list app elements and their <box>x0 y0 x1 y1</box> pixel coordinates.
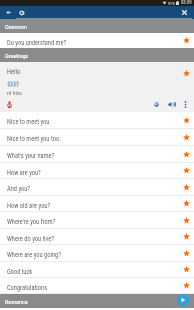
button[interactable]: Nice to meet you <box>0 112 194 129</box>
button[interactable]: More options <box>180 99 191 110</box>
staticText: Hello <box>7 68 21 76</box>
staticText: nǐ hǎo <box>7 89 22 96</box>
staticText: Where are you going? <box>7 251 61 259</box>
button[interactable]: Favourite <box>181 115 192 126</box>
button[interactable]: Where are you going? <box>0 245 194 262</box>
button[interactable]: Nice to meet you too. <box>0 129 194 146</box>
button[interactable]: Favourite <box>181 248 192 259</box>
button[interactable]: Play slowly <box>151 99 162 110</box>
staticText: Good luck <box>7 268 33 276</box>
button[interactable]: Favourite <box>181 198 192 209</box>
staticText: Greetings <box>5 52 29 59</box>
button[interactable]: Play all <box>177 294 189 306</box>
button[interactable]: Language <box>16 7 28 19</box>
button[interactable]: Good luck <box>0 262 194 278</box>
staticText: How old are you? <box>7 202 51 210</box>
button[interactable]: Where do you live? <box>0 229 194 245</box>
button[interactable]: Favourite <box>181 132 192 143</box>
staticText: How are you? <box>7 169 41 177</box>
staticText: Congratulations <box>7 284 48 292</box>
button[interactable]: Romance <box>0 294 194 308</box>
button[interactable]: Play audio <box>166 99 177 110</box>
staticText: Nice to meet you <box>7 118 50 126</box>
button[interactable]: Where're you from? <box>0 212 194 229</box>
button[interactable]: Congratulations <box>0 278 194 294</box>
button[interactable]: Close <box>178 6 191 19</box>
button[interactable]: Favourite <box>181 68 192 79</box>
staticText: 97% <box>168 1 175 6</box>
staticText: 你好 <box>7 80 20 88</box>
button[interactable]: Favourite <box>181 182 192 193</box>
button[interactable]: Favourite <box>181 231 192 242</box>
button[interactable]: Favourite <box>181 165 192 176</box>
button[interactable]: Favourite <box>181 215 192 226</box>
staticText: 03:39 <box>181 0 192 6</box>
staticText: Nice to meet you too. <box>7 135 61 143</box>
button[interactable]: Common <box>0 19 194 33</box>
button[interactable]: Do you understand me? <box>0 33 194 48</box>
button[interactable]: Greetings <box>0 48 194 62</box>
button[interactable]: Favourite <box>181 280 192 291</box>
staticText: Romance <box>5 298 28 305</box>
staticText: Do you understand me? <box>7 39 67 47</box>
staticText: Where do you live? <box>7 235 54 243</box>
button[interactable]: How old are you? <box>0 196 194 212</box>
staticText: What's your name? <box>7 152 55 160</box>
button[interactable]: How are you? <box>0 163 194 179</box>
button[interactable]: Back <box>2 6 15 19</box>
staticText: Where're you from? <box>7 218 56 226</box>
staticText: And you? <box>7 185 31 193</box>
button[interactable]: Record <box>4 99 15 110</box>
staticText: Common <box>5 23 28 30</box>
button[interactable]: And you? <box>0 179 194 196</box>
button[interactable]: Favourite <box>181 149 192 160</box>
button[interactable]: Favourite <box>181 35 192 46</box>
button[interactable]: What's your name? <box>0 146 194 163</box>
button[interactable]: Favourite <box>181 264 192 275</box>
